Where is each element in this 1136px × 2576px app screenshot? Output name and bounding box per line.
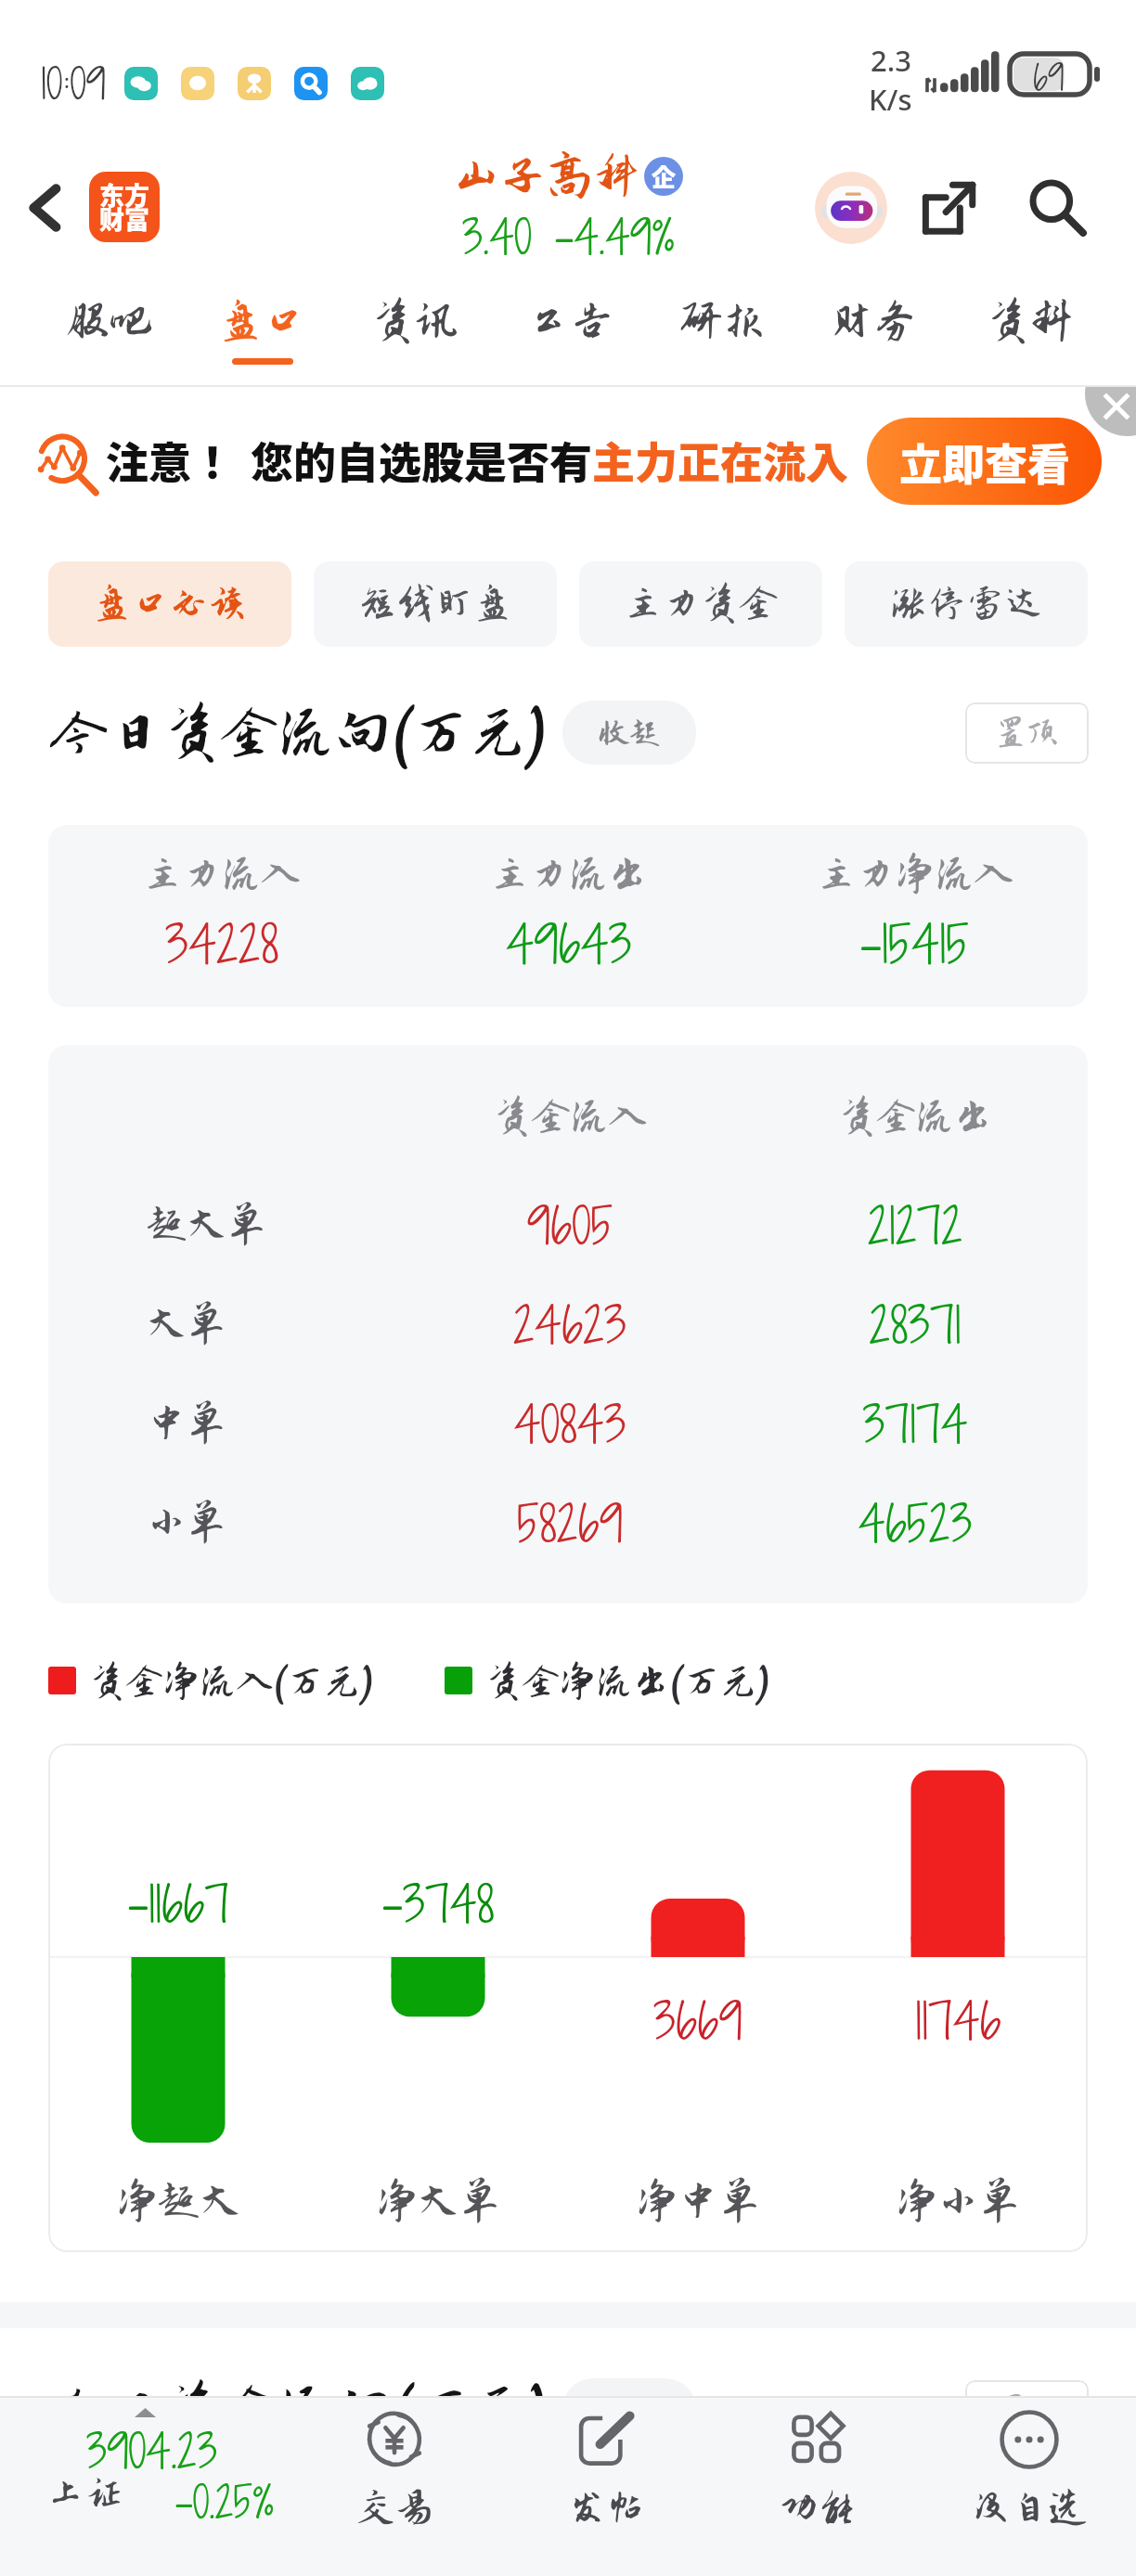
staticText: 收起 (600, 2394, 660, 2428)
button[interactable]: 主力流出 (395, 825, 742, 1007)
button[interactable]: AI assistant (807, 164, 895, 251)
button[interactable]: 置顶 (965, 2380, 1089, 2441)
button[interactable]: 资料 (965, 277, 1095, 385)
button[interactable]: East Money logo (89, 172, 160, 242)
button[interactable]: 盘口 (198, 277, 328, 385)
staticText: -4.49% (554, 204, 675, 269)
staticText: 公告 (527, 297, 614, 345)
button[interactable]: 3904.23 (0, 2398, 306, 2576)
button[interactable]: 发帖 (518, 2398, 694, 2576)
button[interactable]: 收起 (562, 2378, 696, 2442)
staticText: 中单 (147, 1401, 397, 1446)
staticText: 小单 (147, 1501, 397, 1545)
button[interactable]: 交易 (306, 2398, 483, 2576)
staticText: 上证 (46, 2472, 123, 2515)
staticText: 交易 (356, 2487, 433, 2530)
button[interactable]: 小单 (48, 1474, 1088, 1572)
staticText: 企 (652, 159, 677, 194)
staticText: 69 (1033, 54, 1065, 95)
staticText: 净中单 (636, 2178, 761, 2224)
button[interactable]: 盘口必读 (48, 561, 291, 647)
staticText: 功能 (780, 2487, 857, 2530)
button[interactable]: 资讯 (350, 277, 480, 385)
staticText: 财务 (830, 297, 917, 345)
staticText: 24623 (397, 1290, 742, 1359)
button[interactable]: Close ad (1077, 387, 1136, 443)
staticText: 大单 (147, 1302, 397, 1346)
staticText: 今日资金流向(万元) (50, 702, 549, 765)
staticText: 主力净流入 (817, 853, 1013, 896)
staticText: 40843 (397, 1389, 742, 1459)
staticText: 收起 (600, 716, 660, 750)
staticText: 28371 (742, 1290, 1088, 1359)
button[interactable]: 中单 (48, 1374, 1088, 1473)
staticText: 3.40 (462, 204, 532, 269)
staticText: -3748 (381, 1869, 495, 1938)
staticText: 今日资金流向(万元) (50, 2379, 549, 2442)
button[interactable]: 股吧 (45, 277, 174, 385)
staticText: 发帖 (568, 2487, 645, 2530)
staticText: 3669 (653, 1986, 742, 2055)
staticText: 财富 (99, 200, 149, 237)
staticText: 净超大 (116, 2178, 241, 2224)
button[interactable]: Back (6, 168, 85, 248)
staticText: 您的自选股是否有 (251, 429, 592, 491)
button[interactable]: 没自选 (941, 2398, 1117, 2576)
staticText: 21272 (742, 1191, 1088, 1260)
button[interactable]: 大单 (48, 1275, 1088, 1373)
button[interactable]: 超大单 (48, 1176, 1088, 1274)
button[interactable]: 功能 (729, 2398, 906, 2576)
button[interactable]: Share (908, 167, 989, 249)
staticText: 注意！ (106, 429, 234, 491)
staticText: 没自选 (972, 2487, 1088, 2530)
staticText: 34228 (165, 908, 279, 980)
staticText: 主力正在流入 (592, 429, 848, 491)
staticText: 资讯 (371, 297, 458, 345)
button[interactable]: 置顶 (965, 702, 1089, 764)
staticText: 涨停雷达 (889, 583, 1043, 625)
button[interactable]: 公告 (506, 277, 636, 385)
staticText: 超大单 (147, 1203, 397, 1247)
staticText: 研报 (679, 297, 767, 345)
staticText: 资金流入 (397, 1096, 742, 1139)
staticText: 置顶 (995, 2393, 1059, 2428)
staticText: 立即查看 (899, 431, 1070, 493)
staticText: 资料 (987, 297, 1074, 345)
staticText: 37174 (742, 1389, 1088, 1459)
staticText: 9605 (397, 1191, 742, 1260)
staticText: 资金净流出(万元) (485, 1661, 771, 1702)
staticText: 股吧 (66, 297, 153, 345)
staticText: 主力流出 (490, 853, 648, 896)
staticText: 10:09 (41, 54, 106, 113)
staticText: 58269 (397, 1488, 742, 1558)
staticText: -15415 (859, 908, 970, 980)
staticText: 置顶 (995, 715, 1059, 751)
button[interactable]: 主力资金 (579, 561, 822, 647)
staticText: 盘口 (219, 297, 306, 345)
staticText: -11667 (127, 1869, 229, 1938)
staticText: -0.25% (174, 2472, 274, 2532)
button[interactable]: 收起 (562, 701, 696, 765)
button[interactable]: 主力净流入 (742, 825, 1088, 1007)
button[interactable]: 短线盯盘 (314, 561, 557, 647)
staticText: 山子高科 (453, 150, 640, 202)
staticText: 净大单 (376, 2178, 501, 2224)
staticText: 盘口必读 (93, 583, 247, 625)
staticText: 2.3 (871, 41, 911, 80)
staticText: 资金净流入(万元) (89, 1661, 375, 1702)
button[interactable]: 财务 (808, 277, 938, 385)
staticText: 净小单 (896, 2178, 1021, 2224)
staticText: 3904.23 (86, 2418, 217, 2483)
staticText: 短线盯盘 (358, 583, 512, 625)
button[interactable]: 主力流入 (48, 825, 395, 1007)
button[interactable]: 研报 (658, 277, 788, 385)
button[interactable]: 涨停雷达 (845, 561, 1088, 647)
staticText: K/s (869, 80, 912, 119)
staticText: 东方 (99, 176, 149, 213)
staticText: 49643 (506, 908, 632, 980)
staticText: 资金流出 (742, 1096, 1088, 1139)
button[interactable]: Search (1017, 167, 1099, 249)
button[interactable]: 立即查看 (867, 418, 1102, 505)
staticText: 11746 (915, 1986, 1001, 2055)
staticText: 主力资金 (624, 583, 778, 625)
